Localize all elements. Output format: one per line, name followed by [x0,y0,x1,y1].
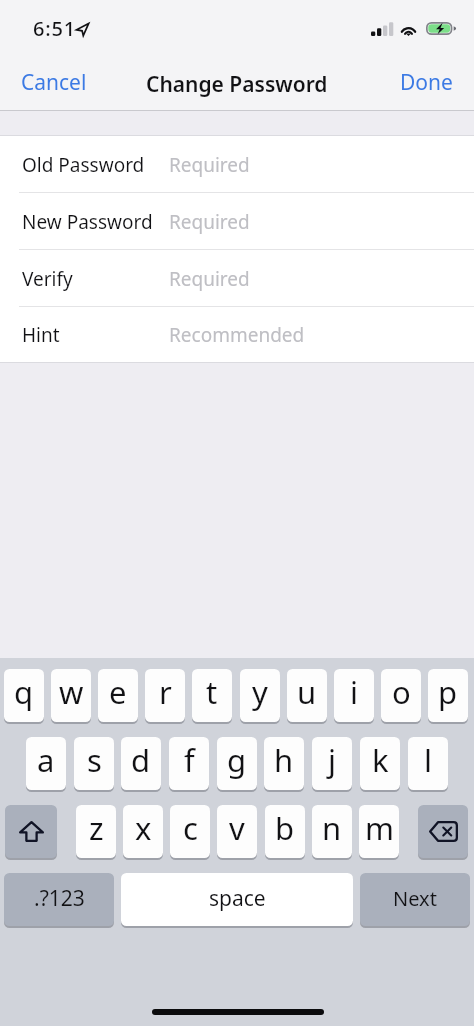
staticText: Verify [22,266,73,292]
button[interactable]: Next [360,873,470,926]
staticText: p [438,671,458,713]
staticText: r [159,671,172,713]
button[interactable]: a [26,737,66,790]
staticText: t [206,671,218,713]
button[interactable]: Shift [5,805,57,858]
staticText: Next [393,885,437,912]
button[interactable]: x [123,805,163,858]
staticText: 6:51 [33,15,77,42]
button[interactable]: Hint [0,307,474,363]
staticText: space [209,884,266,913]
staticText: h [274,739,294,781]
staticText: u [297,671,317,713]
button[interactable]: o [381,669,421,722]
button[interactable]: c [170,805,210,858]
staticText: g [227,739,247,781]
staticText: Done [400,68,453,97]
staticText: m [365,807,394,849]
staticText: Required [169,152,250,178]
staticText: Change Password [146,70,328,99]
button[interactable]: p [428,669,468,722]
staticText: b [275,807,295,849]
button[interactable]: l [408,737,448,790]
button[interactable]: New Password [0,193,474,250]
staticText: Required [169,266,250,292]
button[interactable]: m [359,805,399,858]
staticText: Recommended [169,322,305,348]
button[interactable]: g [217,737,257,790]
staticText: w [59,671,84,713]
staticText: Old Password [22,152,145,178]
staticText: .?123 [34,884,85,913]
staticText: a [37,739,55,781]
staticText: x [135,807,152,849]
staticText: Cancel [21,68,87,97]
staticText: s [87,739,102,781]
staticText: Hint [22,322,60,348]
button[interactable]: n [312,805,352,858]
staticText: o [392,671,411,713]
button[interactable]: z [76,805,116,858]
button[interactable]: h [264,737,304,790]
staticText: l [424,739,432,781]
staticText: e [109,671,127,713]
button[interactable]: y [240,669,280,722]
staticText: d [131,739,151,781]
staticText: n [322,807,342,849]
button[interactable]: f [169,737,209,790]
button[interactable]: k [360,737,400,790]
button[interactable]: j [312,737,352,790]
button[interactable]: u [287,669,327,722]
staticText: j [328,739,336,781]
button[interactable]: .?123 [4,873,114,926]
button[interactable]: e [98,669,138,722]
button[interactable]: q [4,669,44,722]
button[interactable]: Done [379,55,474,110]
staticText: Required [169,209,250,235]
staticText: New Password [22,209,153,235]
button[interactable]: Cancel [0,55,108,110]
button[interactable]: i [334,669,374,722]
button[interactable]: Verify [0,250,474,307]
button[interactable]: s [74,737,114,790]
staticText: y [252,671,268,713]
button[interactable]: space [121,873,353,926]
button[interactable]: t [192,669,232,722]
button[interactable]: v [217,805,257,858]
button[interactable]: d [121,737,161,790]
staticText: f [184,739,195,781]
staticText: v [229,807,245,849]
staticText: z [89,807,104,849]
button[interactable]: Old Password [0,136,474,193]
staticText: k [372,739,389,781]
staticText: c [183,807,198,849]
staticText: i [350,671,358,713]
button[interactable]: r [145,669,185,722]
button[interactable]: w [51,669,91,722]
button[interactable]: b [265,805,305,858]
button[interactable]: Backspace [418,805,468,858]
staticText: q [14,671,34,713]
